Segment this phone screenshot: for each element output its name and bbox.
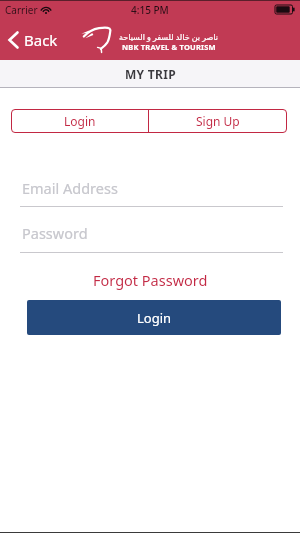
- button[interactable]: Sign Up: [149, 109, 287, 133]
- button[interactable]: Login: [27, 300, 281, 335]
- staticText: MY TRIP: [125, 66, 176, 82]
- button[interactable]: Back: [6, 28, 60, 52]
- staticText: Email Address: [22, 178, 118, 198]
- staticText: NBK TRAVEL & TOURISM: [122, 42, 216, 52]
- staticText: Carrier: [5, 3, 38, 17]
- button[interactable]: Forgot Password: [93, 270, 208, 290]
- staticText: ناصر بن خالد للسفر و السياحة: [119, 31, 219, 42]
- button[interactable]: Email Address: [20, 175, 283, 200]
- staticText: 4:15 PM: [131, 3, 169, 17]
- staticText: Sign Up: [196, 113, 240, 129]
- staticText: Password: [22, 223, 88, 243]
- staticText: Login: [137, 309, 172, 327]
- staticText: Login: [64, 113, 96, 129]
- button[interactable]: Password: [20, 220, 283, 245]
- button[interactable]: Login: [11, 109, 148, 133]
- staticText: Forgot Password: [93, 270, 208, 290]
- staticText: Back: [24, 30, 58, 50]
